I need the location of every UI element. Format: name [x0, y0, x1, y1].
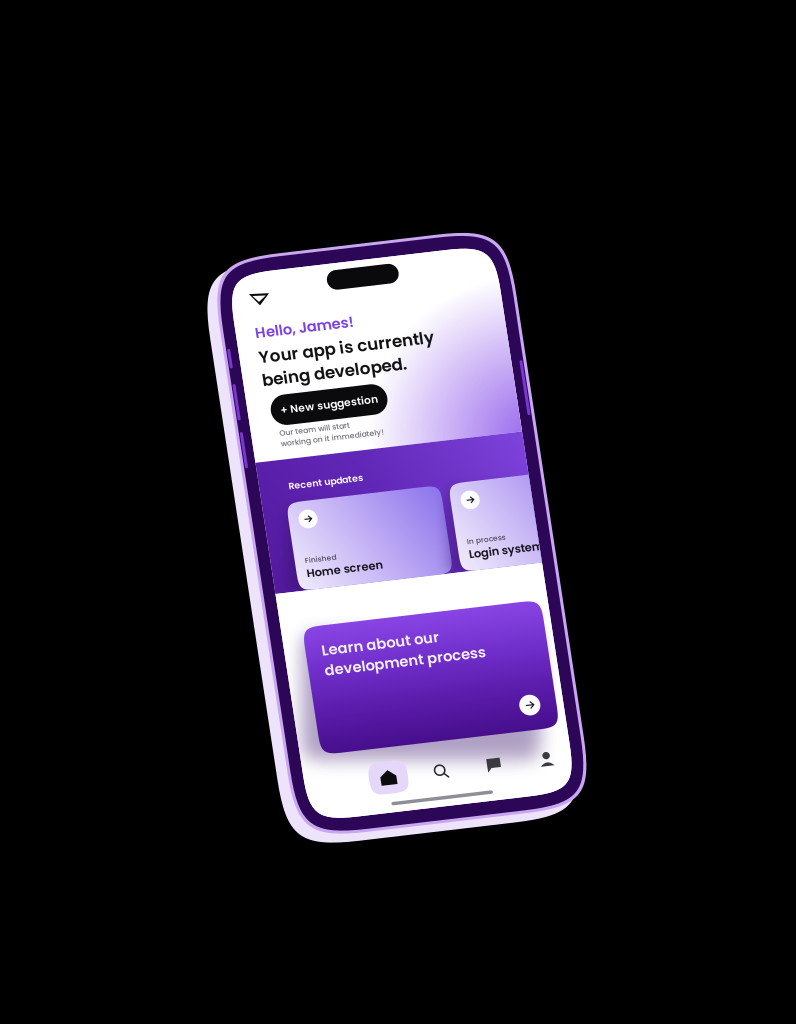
button[interactable]: Learn about our development process: [29, 372, 269, 502]
button[interactable]: In process: [195, 245, 350, 335]
staticText: Login system: [205, 310, 280, 326]
button[interactable]: Profile: [225, 511, 278, 553]
staticText: In process: [205, 300, 244, 310]
